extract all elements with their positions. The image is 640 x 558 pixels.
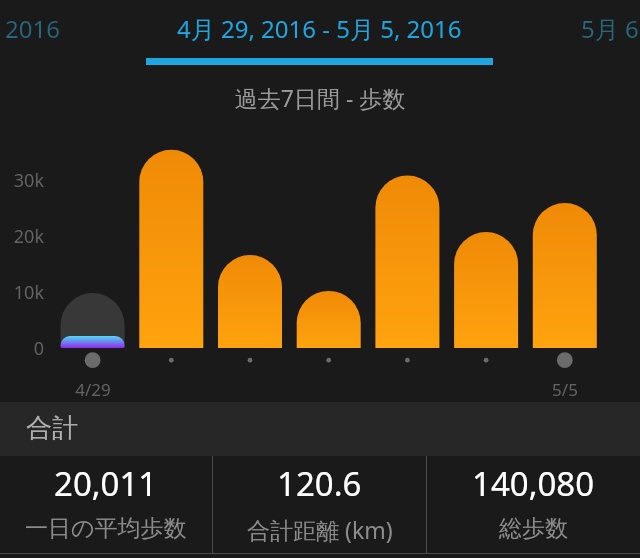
staticText: 合計距離 (km) [247, 514, 393, 545]
button[interactable]: 20,011 [0, 456, 212, 553]
staticText: 過去7日間 - 歩数 [0, 82, 640, 113]
staticText: 2016 [5, 12, 60, 45]
staticText: 5月 6 [581, 12, 639, 45]
staticText: 4/29 [58, 378, 128, 401]
staticText: 30k [0, 168, 44, 193]
button[interactable]: 4月 29, 2016 - 5月 5, 2016 [146, 0, 493, 68]
button[interactable]: 5月 6 [493, 0, 640, 68]
button[interactable]: 2016 [0, 0, 146, 68]
staticText: 20k [0, 224, 44, 249]
staticText: 0 [0, 336, 44, 361]
staticText: 5/5 [530, 378, 600, 401]
staticText: 合計 [26, 412, 78, 445]
staticText: 120.6 [277, 461, 362, 506]
staticText: 4月 29, 2016 - 5月 5, 2016 [177, 12, 462, 45]
button[interactable]: 120.6 [213, 456, 426, 553]
staticText: 総歩数 [499, 514, 568, 543]
staticText: 一日の平均歩数 [25, 514, 187, 543]
button[interactable]: 140,080 [427, 456, 640, 553]
staticText: 20,011 [54, 461, 158, 506]
staticText: 10k [0, 280, 44, 305]
button[interactable]: 合計 [0, 402, 640, 456]
staticText: 140,080 [472, 461, 595, 506]
